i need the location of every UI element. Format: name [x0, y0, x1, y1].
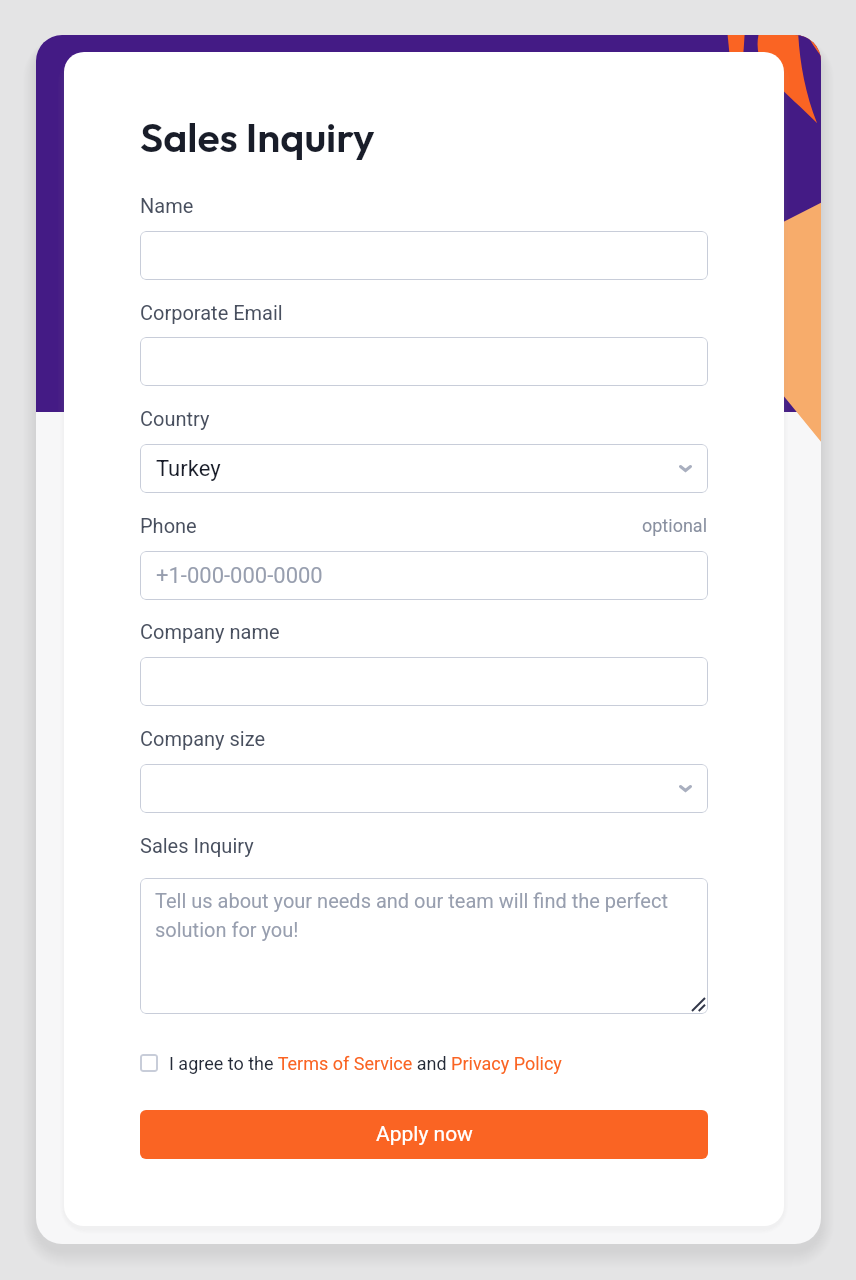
staticText: Company name: [140, 620, 280, 643]
staticText: Apply now: [376, 1122, 473, 1147]
button[interactable]: [140, 337, 708, 386]
button[interactable]: I agree to the Terms of Service and Priv…: [140, 1048, 562, 1078]
button[interactable]: [140, 657, 708, 706]
staticText: Corporate Email: [140, 301, 283, 324]
staticText: Sales Inquiry: [140, 834, 254, 857]
button[interactable]: Apply now: [140, 1110, 708, 1159]
button[interactable]: Turkey: [140, 444, 708, 493]
other: Open dropdown: [679, 465, 692, 472]
staticText: Sales Inquiry: [140, 111, 375, 163]
staticText: Phone: [140, 514, 197, 537]
button[interactable]: Tell us about your needs and our team wi…: [140, 878, 708, 1014]
button[interactable]: Open dropdown: [140, 764, 708, 813]
staticText: I agree to the Terms of Service and Priv…: [169, 1053, 562, 1074]
staticText: Name: [140, 194, 194, 217]
staticText: Turkey: [156, 456, 221, 482]
button[interactable]: [140, 231, 708, 280]
staticText: Tell us about your needs and our team wi…: [155, 889, 694, 942]
other: Open dropdown: [679, 785, 692, 792]
staticText: +1-000-000-0000: [156, 563, 323, 589]
button[interactable]: +1-000-000-0000: [140, 551, 708, 600]
staticText: optional: [642, 515, 708, 536]
staticText: Company size: [140, 727, 266, 750]
staticText: Country: [140, 407, 210, 430]
